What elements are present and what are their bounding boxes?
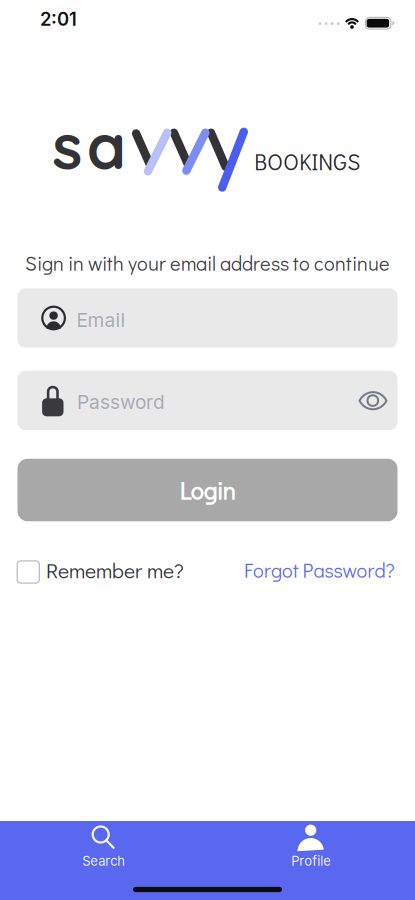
staticText: sa (52, 106, 126, 185)
staticText: Forgot (244, 557, 299, 583)
staticText: 2:01 (40, 8, 77, 30)
staticText: Profile (291, 853, 331, 869)
staticText: Sign in with your email address to conti… (25, 250, 390, 276)
staticText: Search (82, 853, 125, 869)
staticText: Remember me? (46, 556, 184, 584)
staticText: Login (179, 475, 235, 506)
staticText: Password (77, 390, 165, 414)
staticText: Password? (302, 557, 394, 583)
staticText: Email (76, 308, 125, 332)
staticText: BOOKINGS (254, 147, 360, 176)
